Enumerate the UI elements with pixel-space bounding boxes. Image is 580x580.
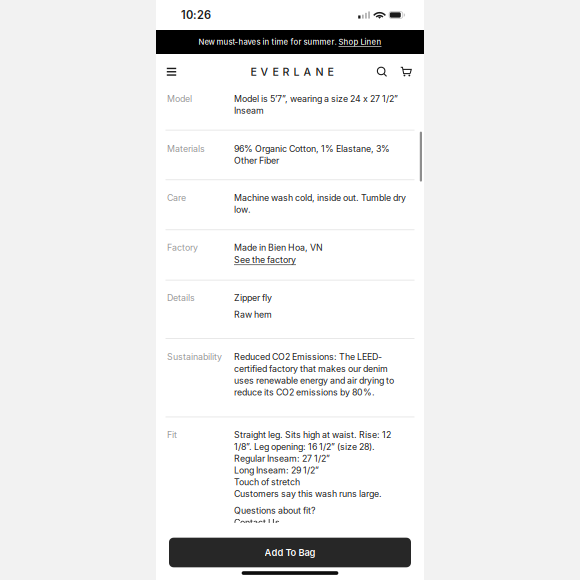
staticText: 96% Organic Cotton, 1% Elastane, 3% Othe… [234, 143, 390, 166]
staticText: Materials [167, 143, 205, 154]
staticText: Fit [167, 430, 177, 440]
staticText: Raw hem [234, 309, 272, 320]
staticText: Questions about fit? Contact Us [234, 505, 315, 528]
button[interactable]: New must-haves in time for summer. [156, 30, 424, 54]
staticText: Model is 5’7”, wearing a size 24 x 27 1/… [234, 93, 398, 116]
staticText: See the factory [234, 254, 296, 265]
staticText: Sustainability [167, 352, 222, 362]
button[interactable]: Cart [394, 54, 418, 90]
staticText: Care [167, 192, 186, 203]
staticText: Zipper fly [234, 292, 272, 303]
button[interactable]: Add To Bag [169, 538, 411, 567]
staticText: EVERLANE [250, 65, 333, 78]
staticText: New must-haves in time for summer. [198, 37, 338, 47]
staticText: Details [167, 292, 195, 303]
button[interactable]: Menu [159, 54, 183, 90]
staticText: Shop Linen [338, 37, 381, 47]
button[interactable]: Search [370, 54, 394, 90]
staticText: Add To Bag [264, 547, 315, 558]
staticText: Machine wash cold, inside out. Tumble dr… [234, 192, 406, 215]
staticText: Factory [167, 242, 198, 253]
button[interactable]: See the factory [234, 254, 408, 265]
staticText: Straight leg. Sits high at waist. Rise: … [234, 430, 391, 499]
staticText: 10:26 [181, 8, 211, 22]
staticText: Model [167, 93, 192, 104]
staticText: Made in Bien Hoa, VN [234, 242, 323, 253]
staticText: Reduced CO2 Emissions: The LEED-certifie… [234, 352, 394, 398]
